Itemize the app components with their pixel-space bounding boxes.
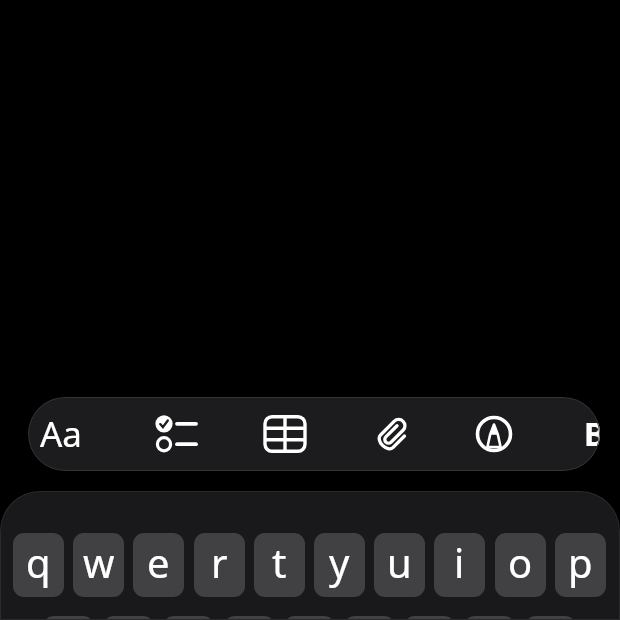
staticText: e: [147, 535, 170, 589]
button[interactable]: [163, 616, 214, 620]
staticText: u: [387, 535, 412, 589]
button[interactable]: [466, 406, 522, 462]
button[interactable]: [144, 406, 200, 462]
button[interactable]: o: [495, 533, 546, 597]
button[interactable]: B: [575, 406, 600, 462]
button[interactable]: e: [133, 533, 184, 597]
button[interactable]: [366, 406, 422, 462]
button[interactable]: q: [13, 533, 64, 597]
staticText: B: [584, 412, 600, 456]
button[interactable]: [284, 616, 335, 620]
staticText: Aa: [40, 410, 83, 458]
button[interactable]: [464, 616, 515, 620]
staticText: p: [568, 535, 593, 589]
button[interactable]: [224, 616, 275, 620]
staticText: o: [508, 535, 533, 589]
button[interactable]: i: [434, 533, 485, 597]
button[interactable]: [103, 616, 154, 620]
button[interactable]: u: [374, 533, 425, 597]
button[interactable]: w: [73, 533, 124, 597]
staticText: t: [272, 535, 287, 589]
button[interactable]: [404, 616, 455, 620]
button[interactable]: [257, 406, 313, 462]
button[interactable]: t: [254, 533, 305, 597]
button[interactable]: r: [194, 533, 245, 597]
staticText: w: [83, 535, 115, 589]
button[interactable]: Aa: [29, 404, 93, 464]
button[interactable]: p: [555, 533, 606, 597]
staticText: i: [454, 535, 465, 589]
button[interactable]: [43, 616, 94, 620]
button[interactable]: y: [314, 533, 365, 597]
staticText: r: [211, 535, 228, 589]
button[interactable]: [344, 616, 395, 620]
staticText: q: [26, 535, 51, 589]
button[interactable]: [525, 616, 576, 620]
staticText: y: [329, 535, 350, 589]
